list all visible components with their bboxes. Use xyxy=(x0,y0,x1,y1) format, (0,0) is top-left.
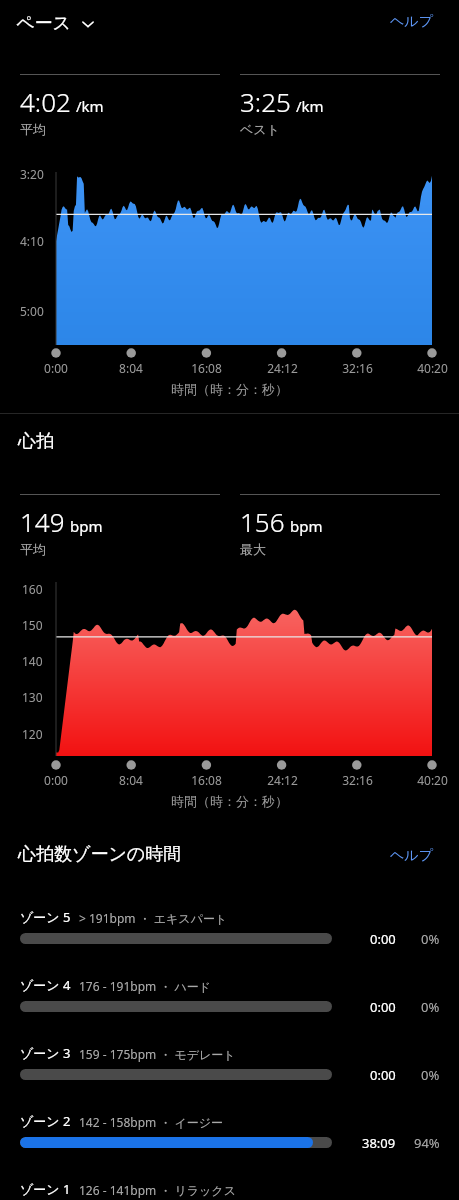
staticText: 時間（時：分：秒） xyxy=(171,381,288,397)
staticText: 4:02 xyxy=(20,84,71,119)
staticText: 94% xyxy=(414,1134,440,1152)
staticText: 24:12 xyxy=(267,772,298,788)
staticText: 16:08 xyxy=(191,360,222,376)
staticText: 140 xyxy=(22,653,43,669)
staticText: 最大 xyxy=(240,541,266,557)
staticText: 0:00 xyxy=(370,1066,396,1084)
staticText: ヘルプ xyxy=(390,13,433,31)
staticText: ゾーン 1 xyxy=(20,1180,71,1198)
staticText: 3:20 xyxy=(20,166,44,182)
staticText: bpm xyxy=(70,516,103,536)
staticText: 8:04 xyxy=(119,772,143,788)
staticText: 0% xyxy=(421,1066,440,1084)
staticText: 心拍 xyxy=(18,430,54,453)
staticText: ゾーン 2 xyxy=(20,1112,71,1130)
staticText: 0% xyxy=(421,998,440,1016)
staticText: 130 xyxy=(22,689,43,705)
staticText: 32:16 xyxy=(342,360,373,376)
staticText: 16:08 xyxy=(191,772,222,788)
staticText: 心拍数ゾーンの時間 xyxy=(18,843,182,866)
staticText: 120 xyxy=(22,726,43,742)
staticText: 159 - 175bpm ・ モデレート xyxy=(79,1046,236,1062)
staticText: /km xyxy=(296,96,324,116)
staticText: ゾーン 4 xyxy=(20,976,71,994)
staticText: 24:12 xyxy=(267,360,298,376)
button[interactable]: ゾーン 1 xyxy=(0,1172,459,1200)
button[interactable]: ヘルプ xyxy=(386,845,437,867)
button[interactable]: ゾーン 2 xyxy=(0,1104,459,1164)
staticText: ゾーン 5 xyxy=(20,908,71,926)
staticText: 0:00 xyxy=(44,360,68,376)
staticText: ゾーン 3 xyxy=(20,1044,71,1062)
button[interactable]: ペース xyxy=(16,12,96,35)
staticText: 0% xyxy=(421,930,440,948)
staticText: 40:20 xyxy=(417,360,448,376)
staticText: bpm xyxy=(290,516,323,536)
staticText: 0:00 xyxy=(370,998,396,1016)
staticText: 5:00 xyxy=(20,303,44,319)
button[interactable]: ヘルプ xyxy=(386,11,437,33)
staticText: 160 xyxy=(22,581,43,597)
staticText: ヘルプ xyxy=(390,847,433,865)
staticText: 156 xyxy=(240,504,285,539)
staticText: 4:10 xyxy=(20,233,44,249)
staticText: 平均 xyxy=(20,121,46,137)
staticText: 32:16 xyxy=(342,772,373,788)
staticText: ペース xyxy=(16,12,71,35)
staticText: 176 - 191bpm ・ ハード xyxy=(79,978,212,994)
staticText: 38:09 xyxy=(362,1134,396,1152)
staticText: 40:20 xyxy=(417,772,448,788)
button[interactable]: ゾーン 4 xyxy=(0,968,459,1028)
staticText: 150 xyxy=(22,617,43,633)
button[interactable]: ゾーン 3 xyxy=(0,1036,459,1096)
staticText: 3:25 xyxy=(240,84,291,119)
staticText: 142 - 158bpm ・ イージー xyxy=(79,1114,224,1130)
staticText: 0:00 xyxy=(44,772,68,788)
staticText: > 191bpm ・ エキスパート xyxy=(79,910,228,926)
staticText: 時間（時：分：秒） xyxy=(171,793,288,809)
staticText: 0:00 xyxy=(370,930,396,948)
staticText: /km xyxy=(76,96,104,116)
button[interactable]: ゾーン 5 xyxy=(0,900,459,960)
staticText: 126 - 141bpm ・ リラックス xyxy=(79,1182,236,1198)
staticText: 149 xyxy=(20,504,65,539)
staticText: 平均 xyxy=(20,541,46,557)
staticText: ベスト xyxy=(240,121,280,137)
staticText: 8:04 xyxy=(119,360,143,376)
